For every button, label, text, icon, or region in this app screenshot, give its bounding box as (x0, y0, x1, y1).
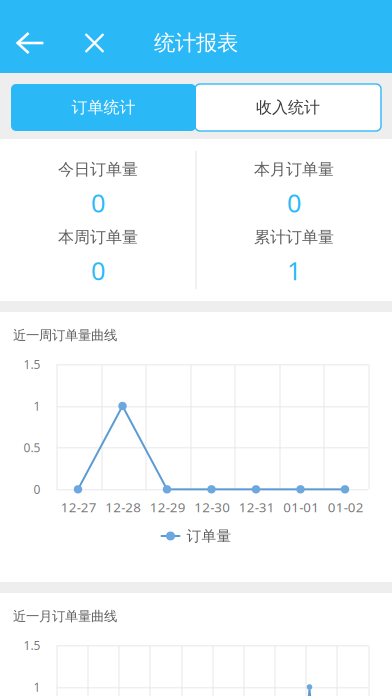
button[interactable]: 收入统计 (195, 84, 381, 131)
staticText: 12-29 (150, 498, 186, 516)
staticText: 1.5 (23, 637, 40, 653)
staticText: 订单量 (186, 527, 231, 545)
staticText: 近一周订单量曲线 (13, 327, 117, 343)
staticText: 本月订单量 (254, 160, 334, 179)
staticText: 12-31 (239, 498, 275, 516)
staticText: 收入统计 (256, 98, 320, 117)
staticText: 12-27 (61, 498, 97, 516)
staticText: 01-01 (283, 498, 319, 516)
button[interactable]: 订单统计 (11, 84, 196, 131)
staticText: 1 (33, 398, 40, 414)
staticText: 12-28 (105, 498, 141, 516)
staticText: 订单统计 (71, 98, 135, 117)
staticText: 1.5 (23, 356, 40, 372)
staticText: 本周订单量 (58, 227, 138, 247)
staticText: 0 (91, 254, 105, 287)
staticText: 近一月订单量曲线 (13, 608, 117, 624)
staticText: 0 (287, 186, 301, 219)
staticText: 0.5 (23, 440, 40, 456)
staticText: 统计报表 (154, 30, 238, 56)
staticText: 0 (91, 186, 105, 219)
staticText: 12-30 (194, 498, 230, 516)
staticText: 01-02 (328, 498, 364, 516)
button[interactable]: Back (8, 20, 52, 66)
staticText: 1 (33, 679, 40, 695)
staticText: 0 (33, 481, 40, 497)
staticText: 累计订单量 (254, 227, 334, 247)
staticText: 今日订单量 (58, 160, 138, 179)
staticText: 1 (287, 254, 301, 287)
button[interactable]: Close (73, 20, 115, 66)
